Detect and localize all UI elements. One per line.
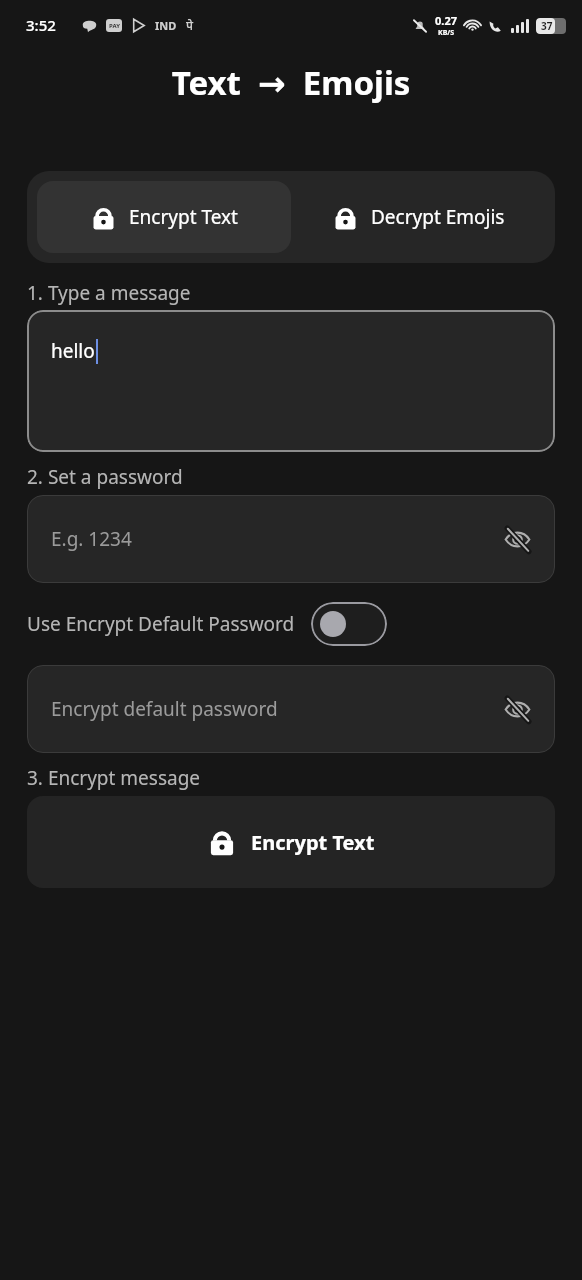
button[interactable]: Encrypt Text	[27, 796, 555, 888]
staticText: Encrypt Text	[129, 204, 238, 230]
button[interactable]: Decrypt Emojis	[291, 181, 545, 253]
button[interactable]: Encrypt Text	[37, 181, 291, 253]
staticText: 3:52	[26, 15, 56, 35]
staticText: Decrypt Emojis	[371, 204, 505, 230]
staticText: E.g. 1234	[51, 526, 132, 552]
button[interactable]: Show default password	[497, 689, 537, 729]
staticText: Use Encrypt Default Password	[27, 611, 295, 637]
staticText: IND	[155, 18, 177, 33]
button[interactable]: Use Encrypt Default Password	[27, 596, 555, 652]
staticText: Encrypt Text	[251, 829, 375, 856]
staticText: KB/S	[438, 28, 455, 38]
button[interactable]: E.g. 1234	[27, 495, 555, 583]
staticText: PAY	[109, 22, 120, 30]
staticText: Text → Emojis	[0, 60, 582, 105]
staticText: 1. Type a message	[27, 280, 582, 306]
staticText: 2. Set a password	[27, 464, 582, 490]
button[interactable]: hello	[27, 310, 555, 452]
staticText: 37	[541, 19, 553, 33]
button[interactable]: Encrypt default password	[27, 665, 555, 753]
staticText: पे	[186, 17, 193, 33]
staticText: 3. Encrypt message	[27, 765, 582, 791]
button[interactable]: Show password	[497, 519, 537, 559]
staticText: hello	[51, 338, 95, 364]
staticText: Encrypt default password	[51, 696, 278, 722]
staticText: 0.27	[435, 13, 457, 28]
